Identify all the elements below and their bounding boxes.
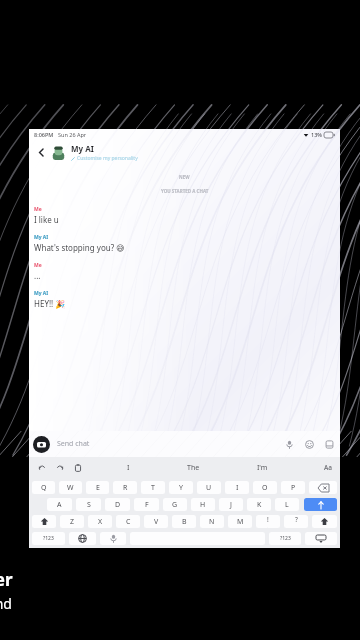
button[interactable]: Stickers xyxy=(303,438,316,451)
button[interactable]: M xyxy=(228,515,252,528)
button[interactable]: Camera xyxy=(33,436,50,453)
staticText: My AI xyxy=(34,234,49,241)
staticText: Q xyxy=(41,483,47,493)
staticText: Customise my personality xyxy=(77,155,138,162)
staticText: YOU STARTED A CHAT xyxy=(161,188,209,194)
button[interactable]: X xyxy=(88,515,112,528)
button[interactable]: N xyxy=(200,515,224,528)
staticText: R xyxy=(123,483,128,493)
button[interactable]: Text style xyxy=(321,461,334,474)
staticText: What's stopping you? 😅 xyxy=(34,242,125,253)
button[interactable]: Backspace xyxy=(309,481,337,494)
button[interactable]: U xyxy=(197,481,221,494)
button[interactable]: Back xyxy=(33,144,49,160)
staticText: B xyxy=(182,517,187,527)
button[interactable]: T xyxy=(141,481,165,494)
button[interactable]: I'm xyxy=(253,461,272,475)
button[interactable]: I xyxy=(123,461,134,475)
staticText: O xyxy=(262,483,268,493)
button[interactable]: L xyxy=(275,498,299,511)
staticText: und xyxy=(0,594,12,613)
staticText: Me xyxy=(34,262,42,269)
button[interactable]: P xyxy=(281,481,305,494)
staticText: Sun 26 Apr xyxy=(58,131,87,138)
staticText: H xyxy=(200,500,206,510)
button[interactable]: C xyxy=(116,515,140,528)
button[interactable]: R xyxy=(113,481,137,494)
staticText: C xyxy=(126,517,131,527)
staticText: Z xyxy=(70,517,75,527)
staticText: tter xyxy=(0,568,13,591)
button[interactable]: Undo xyxy=(35,461,48,474)
staticText: ... xyxy=(34,270,41,281)
staticText: G xyxy=(172,500,178,510)
staticText: A xyxy=(57,500,62,510)
button[interactable]: Voice input xyxy=(100,532,126,545)
button[interactable]: Symbols xyxy=(269,532,301,545)
staticText: 8:06PM xyxy=(34,131,54,138)
staticText: Me xyxy=(34,206,42,213)
staticText: NEW xyxy=(179,174,190,180)
staticText: M xyxy=(237,517,244,527)
button[interactable]: Q xyxy=(32,481,55,494)
button[interactable]: Hide keyboard xyxy=(305,532,337,545)
button[interactable]: Enter xyxy=(304,498,337,511)
button[interactable]: Shift xyxy=(312,515,337,528)
staticText: K xyxy=(257,500,262,510)
button[interactable]: H xyxy=(191,498,215,511)
staticText: I'm xyxy=(257,463,268,473)
staticText: HEY!! 🎉 xyxy=(34,298,66,309)
staticText: X xyxy=(98,517,103,527)
staticText: S xyxy=(87,500,91,510)
button[interactable]: Profile xyxy=(51,145,66,160)
button[interactable]: Symbols xyxy=(32,532,65,545)
button[interactable]: Voice note xyxy=(283,438,296,451)
staticText: W xyxy=(67,483,74,493)
button[interactable]: ! xyxy=(256,515,280,528)
button[interactable]: B xyxy=(172,515,196,528)
button[interactable]: Gallery xyxy=(323,438,336,451)
button[interactable]: Y xyxy=(169,481,193,494)
button[interactable]: I xyxy=(225,481,249,494)
staticText: Aa xyxy=(324,463,332,472)
staticText: My AI xyxy=(34,290,49,297)
staticText: ?123 xyxy=(43,535,54,542)
staticText: Send chat xyxy=(57,439,90,449)
button[interactable]: S xyxy=(76,498,101,511)
button[interactable]: O xyxy=(253,481,277,494)
button[interactable]: W xyxy=(59,481,82,494)
staticText: 13% xyxy=(311,131,322,138)
staticText: J xyxy=(230,500,232,510)
staticText: I xyxy=(236,483,239,493)
button[interactable]: E xyxy=(86,481,109,494)
button[interactable]: A xyxy=(47,498,72,511)
button[interactable]: Z xyxy=(60,515,84,528)
staticText: I like u xyxy=(34,214,59,225)
button[interactable]: Redo xyxy=(53,461,66,474)
staticText: I xyxy=(127,463,130,473)
staticText: D xyxy=(115,500,121,510)
button[interactable]: ? xyxy=(284,515,308,528)
button[interactable]: V xyxy=(144,515,168,528)
button[interactable]: Shift xyxy=(32,515,56,528)
button[interactable]: My AI xyxy=(71,143,138,162)
button[interactable]: J xyxy=(219,498,243,511)
button[interactable]: The xyxy=(183,461,204,475)
staticText: My AI xyxy=(71,143,94,154)
staticText: The xyxy=(187,463,200,473)
button[interactable]: F xyxy=(134,498,159,511)
button[interactable]: K xyxy=(247,498,271,511)
staticText: E xyxy=(96,483,100,493)
staticText: ? xyxy=(295,515,298,524)
staticText: V xyxy=(154,517,159,527)
staticText: F xyxy=(145,500,149,510)
button[interactable]: Clipboard xyxy=(71,461,84,474)
staticText: ?123 xyxy=(280,535,291,542)
staticText: ! xyxy=(267,515,269,524)
button[interactable]: D xyxy=(105,498,130,511)
button[interactable]: Change language xyxy=(69,532,96,545)
button[interactable]: G xyxy=(163,498,187,511)
